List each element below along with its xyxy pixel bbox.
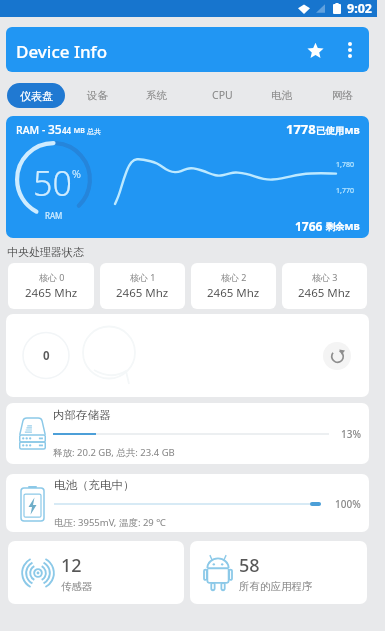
staticText: 12 <box>61 553 82 578</box>
staticText: 1766 <box>295 218 323 234</box>
button[interactable]: More options <box>333 33 367 67</box>
staticText: 电压: 3955mV, 温度: 29 ℃ <box>54 516 166 529</box>
button[interactable]: 58 <box>190 541 367 604</box>
staticText: 0 <box>43 348 50 364</box>
staticText: 9:02 <box>347 0 372 17</box>
button[interactable]: RAM - <box>6 116 369 238</box>
button[interactable]: 0 <box>6 314 369 397</box>
staticText: 内部存储器 <box>53 408 111 422</box>
staticText: 电池（充电中） <box>54 478 135 492</box>
staticText: 1,780 <box>336 160 354 170</box>
button[interactable]: 内部存储器 <box>6 403 369 464</box>
staticText: 2465 Mhz <box>298 285 351 301</box>
staticText: 已使用MB <box>316 124 360 137</box>
staticText: 传感器 <box>61 580 93 593</box>
staticText: CPU <box>212 88 233 102</box>
button[interactable]: Refresh <box>323 342 351 370</box>
staticText: 1,770 <box>336 186 354 196</box>
staticText: 35 <box>48 121 62 137</box>
button[interactable]: 电池 <box>256 80 306 110</box>
staticText: 2465 Mhz <box>116 285 169 301</box>
staticText: 释放: 20.2 GB, 总共: 23.4 GB <box>53 446 175 459</box>
button[interactable]: CPU <box>197 80 247 110</box>
button[interactable]: 设备 <box>72 80 122 110</box>
staticText: RAM - <box>16 123 48 137</box>
button[interactable]: Favorite <box>297 32 333 68</box>
staticText: 核心 0 <box>39 271 65 283</box>
button[interactable]: 系统 <box>131 80 181 110</box>
staticText: 核心 2 <box>221 271 247 283</box>
staticText: 58 <box>239 553 260 578</box>
button[interactable]: 核心 0 <box>8 263 94 309</box>
staticText: 核心 3 <box>312 271 338 283</box>
staticText: 所有的应用程序 <box>239 580 313 593</box>
staticText: RAM <box>45 210 63 221</box>
staticText: 中央处理器状态 <box>7 245 84 259</box>
staticText: Device Info <box>16 40 108 63</box>
button[interactable]: 仪表盘 <box>7 83 65 108</box>
button[interactable]: 核心 1 <box>100 263 185 309</box>
staticText: 核心 1 <box>130 271 156 283</box>
staticText: 总共 <box>87 127 101 136</box>
button[interactable]: 12 <box>8 541 184 604</box>
staticText: 13% <box>341 427 361 441</box>
button[interactable]: 核心 3 <box>282 263 367 309</box>
staticText: 仪表盘 <box>20 89 53 103</box>
staticText: 电池 <box>271 89 292 102</box>
staticText: 100% <box>335 497 361 511</box>
staticText: 系统 <box>146 89 167 102</box>
staticText: 2465 Mhz <box>207 285 260 301</box>
staticText: 设备 <box>87 89 108 102</box>
staticText: 44 <box>62 125 72 136</box>
staticText: MB <box>72 126 87 136</box>
button[interactable]: 核心 2 <box>191 263 276 309</box>
staticText: 网络 <box>332 89 353 102</box>
staticText: 1778 <box>286 120 316 138</box>
staticText: 50 <box>33 160 72 206</box>
button[interactable]: 电池（充电中） <box>6 474 369 532</box>
staticText: 2465 Mhz <box>25 285 78 301</box>
button[interactable]: 网络 <box>317 80 367 110</box>
staticText: 剩余MB <box>323 220 360 233</box>
staticText: % <box>72 166 81 181</box>
